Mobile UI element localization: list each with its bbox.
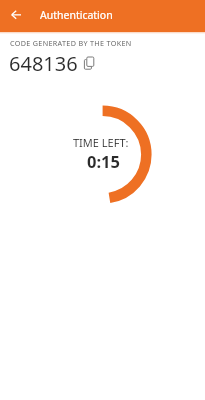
staticText: Authentication: [40, 8, 113, 22]
button[interactable]: Copy code: [82, 56, 98, 72]
button[interactable]: Back: [0, 0, 32, 32]
staticText: TIME LEFT:: [73, 135, 129, 150]
staticText: CODE GENERATED BY THE TOKEN: [10, 38, 132, 48]
staticText: 648136: [9, 50, 78, 77]
staticText: 0:15: [87, 150, 120, 172]
